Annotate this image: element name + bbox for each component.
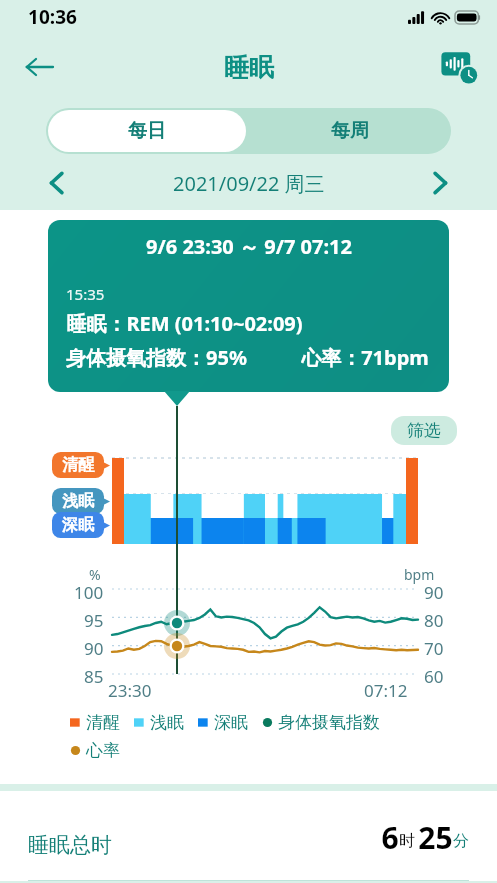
staticText: 身体摄氧指数：95% (66, 344, 247, 371)
staticText: 每日 (128, 119, 166, 143)
staticText: 清醒 (62, 455, 94, 475)
staticText: 70 (424, 637, 444, 660)
staticText: 筛选 (407, 420, 441, 441)
staticText: 60 (424, 665, 444, 688)
staticText: 睡眠：REM (01:10~02:09) (66, 310, 303, 337)
button[interactable]: Next day (423, 166, 457, 200)
staticText: 90 (84, 637, 104, 660)
staticText: 80 (424, 609, 444, 632)
button[interactable]: 睡眠总时 (0, 791, 497, 881)
staticText: 身体摄氧指数 (278, 712, 380, 733)
staticText: 浅眠 (62, 491, 94, 511)
staticText: 07:12 (364, 679, 408, 702)
staticText: 心率：71bpm (301, 344, 429, 371)
staticText: 分 (453, 831, 469, 851)
staticText: 15:35 (66, 284, 105, 304)
staticText: 时 (399, 831, 415, 851)
button[interactable]: 每周 (248, 108, 451, 154)
button[interactable]: 筛选 (407, 420, 441, 441)
button[interactable]: Sleep recording (435, 43, 483, 91)
staticText: 睡眠总时 (28, 832, 112, 858)
staticText: 25 (418, 817, 453, 858)
button[interactable]: 每日 (48, 110, 246, 152)
staticText: bpm (404, 565, 435, 584)
staticText: 深眠 (62, 515, 94, 535)
staticText: % (89, 565, 101, 584)
button[interactable]: Back (14, 42, 64, 92)
staticText: 85 (84, 665, 104, 688)
staticText: 90 (424, 581, 444, 604)
staticText: 清醒 (86, 712, 120, 733)
staticText: 心率 (86, 740, 120, 761)
staticText: 6 (381, 817, 399, 858)
staticText: 浅眠 (150, 712, 184, 733)
staticText: 睡眠 (224, 52, 274, 83)
button[interactable]: Previous day (40, 166, 74, 200)
staticText: 深眠 (214, 712, 248, 733)
staticText: 95 (84, 609, 104, 632)
staticText: 每周 (331, 119, 369, 143)
staticText: 23:30 (108, 679, 152, 702)
staticText: 2021/09/22 周三 (173, 170, 325, 197)
staticText: 9/6 23:30 ～ 9/7 07:12 (146, 233, 352, 260)
staticText: 100 (74, 581, 104, 604)
staticText: 10:36 (28, 4, 77, 30)
